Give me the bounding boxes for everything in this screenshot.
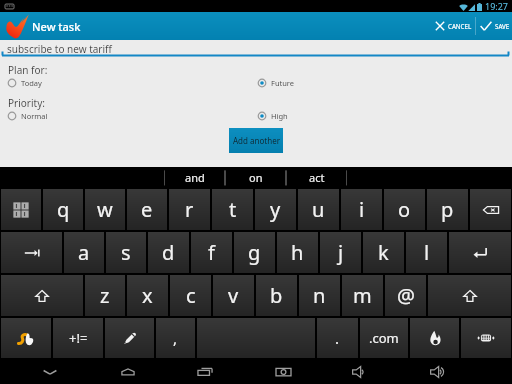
staticText: v [228,282,239,309]
button[interactable]: Shift [428,275,511,316]
staticText: d [162,239,175,266]
button[interactable]: z [85,275,125,316]
button[interactable]: b [256,275,297,316]
staticText: @ [397,282,415,309]
staticText: subscribe to new tariff [7,42,112,56]
button[interactable]: k [363,232,404,273]
staticText: and [185,170,205,185]
button[interactable]: Future [256,77,295,89]
button[interactable]: l [406,232,447,273]
button[interactable]: SAVE [476,12,512,40]
staticText: q [57,196,70,223]
staticText: act [309,170,325,185]
button[interactable]: i [341,189,382,230]
staticText: g [248,239,261,266]
staticText: m [353,282,372,309]
staticText: CANCEL [448,22,472,30]
staticText: c [186,282,196,309]
staticText: 19:27 [485,0,509,12]
button[interactable]: and [164,167,225,188]
button[interactable]: . [317,318,358,358]
button[interactable]: Space [197,318,315,358]
staticText: h [291,239,304,266]
button[interactable]: Enter [449,232,511,273]
button[interactable]: h [277,232,318,273]
staticText: , [173,328,178,348]
button[interactable]: Shift [1,275,83,316]
staticText: High [271,111,288,121]
staticText: n [313,282,326,309]
staticText: Plan for: [8,63,48,77]
button[interactable]: s [106,232,146,273]
button[interactable]: f [191,232,232,273]
staticText: b [270,282,283,309]
staticText: .com [369,329,399,347]
button[interactable]: d [148,232,189,273]
staticText: l [424,239,430,266]
button[interactable]: act [286,167,347,188]
staticText: . [335,328,340,348]
button[interactable]: @ [385,275,426,316]
button[interactable]: y [255,189,296,230]
button[interactable]: v [213,275,254,316]
button[interactable]: on [225,167,286,188]
button[interactable]: Symbols [1,189,41,230]
button[interactable]: j [320,232,361,273]
button[interactable]: x [127,275,168,316]
staticText: x [142,282,153,309]
button[interactable]: Handwriting [105,318,154,358]
button[interactable]: g [234,232,275,273]
staticText: t [229,196,237,223]
button[interactable]: Today [6,77,42,89]
button[interactable]: p [427,189,468,230]
button[interactable]: a [64,232,104,273]
staticText: Future [271,78,295,88]
staticText: k [378,239,389,266]
button[interactable]: Volume down [346,359,374,384]
staticText: +!= [69,329,88,347]
button[interactable]: Normal [6,110,48,122]
staticText: a [78,239,90,266]
staticText: u [312,196,325,223]
button[interactable]: +!= [53,318,103,358]
button[interactable]: Add another [229,128,283,153]
button[interactable]: .com [360,318,408,358]
button[interactable]: w [85,189,125,230]
staticText: j [338,239,344,266]
button[interactable]: o [384,189,425,230]
button[interactable]: m [342,275,383,316]
button[interactable]: n [299,275,340,316]
staticText: s [121,239,131,266]
staticText: f [208,239,215,266]
staticText: on [249,170,263,185]
staticText: Add another [233,135,280,146]
button[interactable]: e [127,189,167,230]
button[interactable]: Volume up [424,359,452,384]
staticText: SAVE [495,22,510,30]
button[interactable]: Tab [1,232,62,273]
button[interactable]: Recent apps [191,359,219,384]
button[interactable]: q [43,189,83,230]
button[interactable]: r [169,189,210,230]
button[interactable]: t [212,189,253,230]
button[interactable]: Gesture typing [1,318,51,358]
staticText: e [141,196,153,223]
button[interactable]: , [156,318,195,358]
staticText: Normal [21,111,48,121]
button[interactable]: High [256,110,288,122]
button[interactable]: Backspace [470,189,511,230]
button[interactable]: Screenshot [269,359,297,384]
button[interactable]: Switch keyboard [461,318,511,358]
staticText: r [185,196,194,223]
button[interactable]: Home [114,359,142,384]
staticText: w [97,196,113,223]
button[interactable]: u [298,189,339,230]
button[interactable]: CANCEL [429,12,475,40]
button[interactable]: c [170,275,211,316]
staticText: z [100,282,110,309]
staticText: Priority: [8,96,45,110]
staticText: o [398,196,411,223]
button[interactable]: Back [36,359,64,384]
button[interactable]: Emoji [410,318,459,358]
staticText: i [359,196,365,223]
